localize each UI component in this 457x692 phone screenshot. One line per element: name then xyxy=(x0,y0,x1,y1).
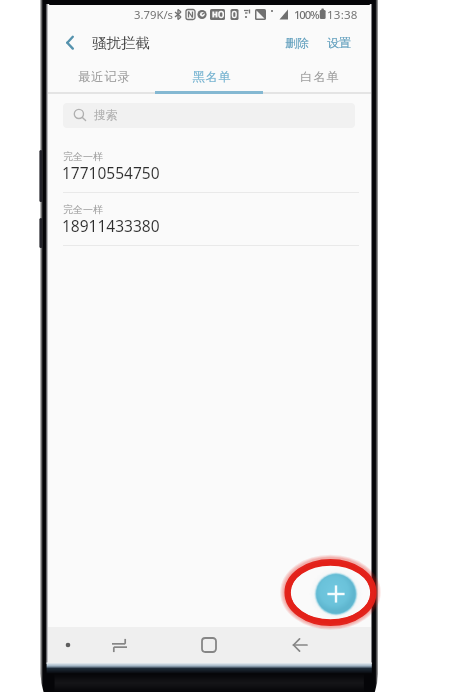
staticText: 设置 xyxy=(327,35,351,50)
staticText: 白名单 xyxy=(300,69,340,84)
button[interactable]: 完全一样 xyxy=(48,140,371,193)
button[interactable]: Recent apps xyxy=(107,633,131,657)
staticText: 黑名单 xyxy=(192,69,232,84)
button[interactable]: 最近记录 xyxy=(48,60,155,94)
staticText: 搜索 xyxy=(94,108,118,123)
staticText: 最近记录 xyxy=(78,69,131,84)
button[interactable]: 黑名单 xyxy=(155,60,263,94)
staticText: 100% xyxy=(294,7,319,22)
button[interactable]: Back xyxy=(288,633,312,657)
staticText: 删除 xyxy=(285,35,309,50)
staticText: 完全一样 xyxy=(63,203,103,216)
button[interactable]: Menu xyxy=(56,633,80,657)
staticText: 18911433380 xyxy=(62,215,160,236)
button[interactable]: 删除 xyxy=(280,27,314,57)
button[interactable]: Home xyxy=(197,633,221,657)
button[interactable]: 白名单 xyxy=(263,60,371,94)
button[interactable]: Add to blocklist xyxy=(314,572,358,616)
button[interactable]: Back xyxy=(56,30,80,54)
button[interactable]: 完全一样 xyxy=(48,193,371,246)
staticText: 3.79K/s xyxy=(134,7,174,22)
button[interactable]: 设置 xyxy=(322,27,356,57)
button[interactable]: 搜索 xyxy=(63,103,355,128)
staticText: 17710554750 xyxy=(62,162,160,183)
staticText: 骚扰拦截 xyxy=(92,34,150,52)
staticText: 13:38 xyxy=(327,7,358,23)
staticText: 完全一样 xyxy=(63,150,103,163)
